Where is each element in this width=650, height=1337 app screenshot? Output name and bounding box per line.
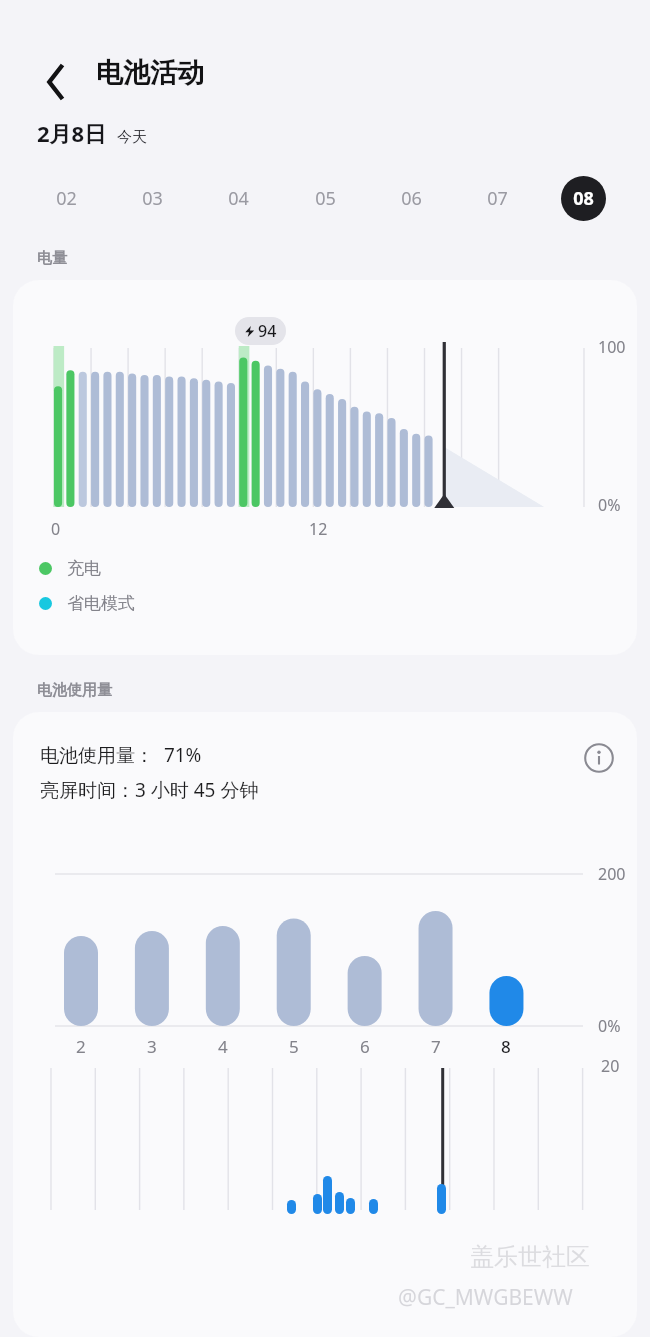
staticText: 12 bbox=[309, 518, 328, 540]
staticText: 06 bbox=[401, 186, 422, 211]
staticText: 07 bbox=[487, 186, 508, 211]
staticText: 03 bbox=[142, 186, 163, 211]
staticText: 0 bbox=[51, 518, 61, 540]
button[interactable]: 6 bbox=[347, 1033, 383, 1059]
button[interactable]: 06 bbox=[384, 171, 438, 225]
button[interactable]: 04 bbox=[211, 171, 265, 225]
staticText: 省电模式 bbox=[67, 593, 135, 614]
staticText: 4 bbox=[218, 1035, 228, 1058]
button[interactable]: 7 bbox=[418, 1033, 454, 1059]
staticText: 8 bbox=[501, 1035, 511, 1058]
staticText: 盖乐世社区 bbox=[470, 1242, 590, 1272]
staticText: 充电 bbox=[67, 558, 101, 579]
button[interactable]: 07 bbox=[470, 171, 524, 225]
button[interactable]: 08 bbox=[556, 171, 610, 225]
staticText: 20 bbox=[601, 1055, 620, 1077]
staticText: 2月8日 bbox=[37, 118, 107, 148]
staticText: 亮屏时间：3 小时 45 分钟 bbox=[40, 777, 259, 803]
staticText: 200 bbox=[598, 863, 626, 885]
staticText: 100 bbox=[598, 336, 626, 358]
button[interactable]: 4 bbox=[205, 1033, 241, 1059]
staticText: 5 bbox=[289, 1035, 299, 1058]
button[interactable]: Back bbox=[30, 57, 80, 107]
staticText: 6 bbox=[360, 1035, 370, 1058]
staticText: 0% bbox=[598, 494, 621, 516]
button[interactable]: Information bbox=[576, 735, 622, 781]
button[interactable]: 2 bbox=[63, 1033, 99, 1059]
button[interactable]: 03 bbox=[125, 171, 179, 225]
button[interactable]: 5 bbox=[276, 1033, 312, 1059]
staticText: 0% bbox=[598, 1015, 621, 1037]
staticText: 94 bbox=[258, 320, 277, 342]
staticText: 电量 bbox=[37, 249, 67, 268]
staticText: 3 bbox=[147, 1035, 157, 1058]
staticText: 电池活动 bbox=[96, 56, 204, 90]
staticText: 2 bbox=[76, 1035, 86, 1058]
staticText: @GC_MWGBEWW bbox=[398, 1283, 573, 1312]
staticText: 7 bbox=[431, 1035, 441, 1058]
staticText: 今天 bbox=[117, 128, 147, 147]
staticText: 08 bbox=[573, 186, 594, 211]
button[interactable]: 05 bbox=[298, 171, 352, 225]
staticText: 04 bbox=[228, 186, 249, 211]
button[interactable]: 3 bbox=[134, 1033, 170, 1059]
button[interactable]: 8 bbox=[488, 1033, 524, 1059]
button[interactable]: 02 bbox=[39, 171, 93, 225]
staticText: 电池使用量： 71% bbox=[40, 742, 202, 768]
staticText: 电池使用量 bbox=[37, 681, 112, 700]
staticText: 02 bbox=[56, 186, 77, 211]
staticText: 05 bbox=[315, 186, 336, 211]
button[interactable]: 100 bbox=[13, 280, 637, 655]
